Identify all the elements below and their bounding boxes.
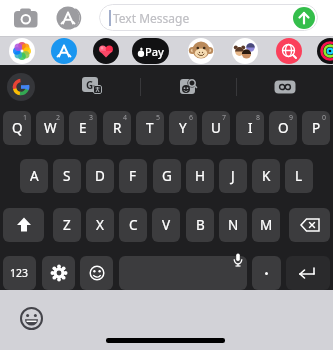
button[interactable] [80,256,113,290]
staticText: Pay [145,44,164,59]
button[interactable]: X [86,208,114,242]
button[interactable] [273,75,297,99]
staticText: K [262,167,271,185]
button[interactable]: Pay [132,38,169,64]
button[interactable]: T [136,111,164,145]
staticText: Y [179,119,187,137]
button[interactable] [286,256,330,290]
staticText: I [248,119,253,137]
button[interactable]: J [219,159,247,193]
button[interactable] [18,305,45,332]
staticText: E [79,119,87,137]
staticText: S [63,167,71,185]
staticText: X [96,216,104,234]
staticText: 123 [10,266,29,280]
staticText: T [146,119,154,137]
button[interactable]: F [119,159,147,193]
button[interactable]: D [86,159,114,193]
staticText: F [129,167,137,185]
staticText: M [260,216,273,234]
button[interactable] [232,38,258,64]
staticText: 3 [89,113,94,123]
staticText: D [95,167,105,185]
staticText: 2 [56,113,61,123]
staticText: V [162,216,171,234]
button[interactable]: A [20,159,48,193]
staticText: 7 [222,113,227,123]
button[interactable]: P [302,111,330,145]
button[interactable] [9,38,35,64]
button[interactable]: G [153,159,181,193]
button[interactable]: E [69,111,97,145]
button[interactable] [289,208,330,242]
staticText: 6 [189,113,194,123]
staticText: 0 [322,113,327,123]
button[interactable]: I [236,111,264,145]
button[interactable] [293,7,315,29]
button[interactable]: N [219,208,247,242]
button[interactable] [252,256,281,290]
staticText: Text Message [113,10,190,26]
button[interactable]: B [186,208,214,242]
staticText: 1 [23,113,28,123]
button[interactable]: C [119,208,147,242]
button[interactable]: V [152,208,180,242]
staticText: P [312,119,321,137]
button[interactable]: Q [3,111,31,145]
button[interactable] [56,5,82,31]
staticText: J [231,167,235,185]
staticText: B [196,216,205,234]
button[interactable] [177,75,201,99]
button[interactable]: 123 [3,256,36,290]
staticText: L [295,167,303,185]
staticText: 4 [123,113,128,123]
staticText: 8 [256,113,261,123]
button[interactable]: O [269,111,297,145]
button[interactable]: Text Message [99,4,318,31]
staticText: U [211,119,221,137]
button[interactable] [188,38,214,64]
staticText: 5 [156,113,161,123]
button[interactable] [3,208,44,242]
staticText: Q [12,119,23,137]
button[interactable] [51,38,77,64]
button[interactable] [7,73,35,101]
button[interactable] [317,38,333,64]
staticText: A [30,167,39,185]
button[interactable]: Y [169,111,197,145]
staticText: H [195,167,206,185]
staticText: C [129,216,138,234]
staticText: R [113,119,122,137]
button[interactable]: R [103,111,131,145]
staticText: O [278,119,289,137]
button[interactable]: W [36,111,64,145]
button[interactable]: H [186,159,214,193]
staticText: 9 [289,113,294,123]
staticText: N [228,216,239,234]
button[interactable]: U [202,111,230,145]
staticText: W [44,119,57,137]
button[interactable]: M [252,208,280,242]
button[interactable] [119,256,247,290]
staticText: Z [63,216,71,234]
button[interactable] [276,38,302,64]
staticText: G [162,167,172,185]
button[interactable]: Z [53,208,81,242]
button[interactable] [42,256,75,290]
staticText: G [86,78,94,92]
button[interactable]: K [252,159,280,193]
button[interactable]: S [53,159,81,193]
button[interactable] [93,38,119,64]
button[interactable] [10,5,42,31]
button[interactable]: L [285,159,313,193]
button[interactable]: G [81,75,105,99]
